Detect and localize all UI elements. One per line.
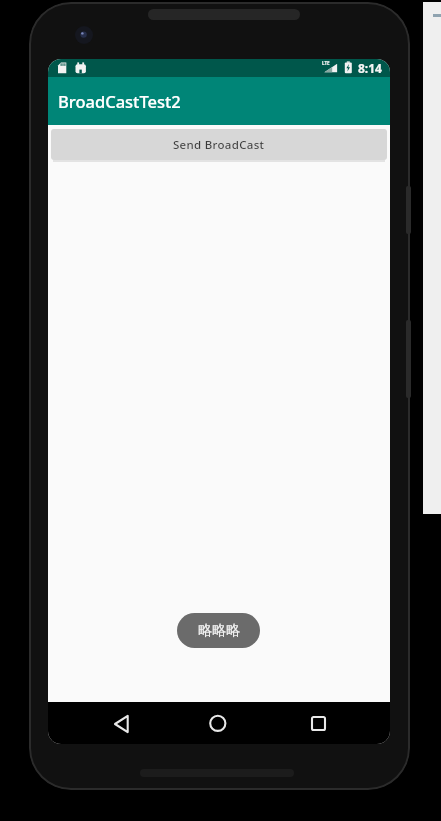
- staticText: BroadCastTest2: [58, 90, 181, 112]
- button[interactable]: Send BroadCast: [51, 129, 387, 160]
- staticText: LTE: [322, 60, 330, 66]
- staticText: 略略略: [198, 622, 240, 640]
- button[interactable]: [48, 702, 390, 744]
- staticText: 8:14: [358, 60, 382, 76]
- staticText: Send BroadCast: [173, 137, 265, 153]
